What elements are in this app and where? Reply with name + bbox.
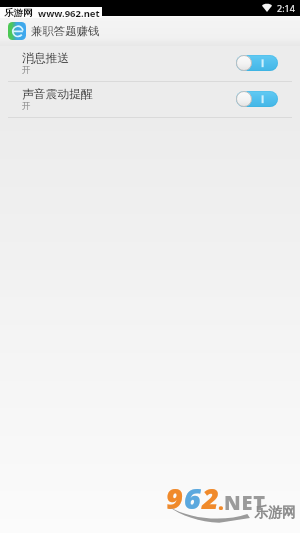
staticText: 乐游网 [4, 7, 33, 18]
staticText: NET [224, 489, 266, 516]
staticText: 乐游网 [254, 504, 296, 522]
staticText: 6 [184, 478, 202, 517]
button[interactable]: Toggle switch, on [236, 55, 278, 71]
button[interactable]: 消息推送 [0, 46, 300, 81]
staticText: . [218, 489, 224, 516]
staticText: 开 [22, 65, 31, 76]
staticText: 声音震动提醒 [22, 87, 93, 102]
staticText: 2:14 [277, 2, 295, 14]
button[interactable]: App icon [8, 22, 26, 40]
button[interactable]: 声音震动提醒 [0, 82, 300, 117]
staticText: www.962.net [38, 7, 100, 18]
staticText: 9 [166, 478, 184, 517]
staticText: 兼职答题赚钱 [31, 24, 100, 38]
staticText: 2 [202, 478, 220, 517]
staticText: 开 [22, 101, 31, 112]
button[interactable]: Toggle switch, on [236, 91, 278, 107]
staticText: 消息推送 [22, 51, 70, 66]
